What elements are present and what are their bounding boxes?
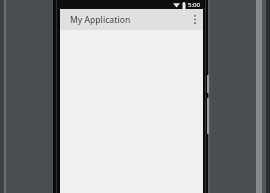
button[interactable]: More options (187, 9, 203, 30)
staticText: My Application (70, 14, 131, 26)
staticText: 5:00 (188, 1, 200, 9)
